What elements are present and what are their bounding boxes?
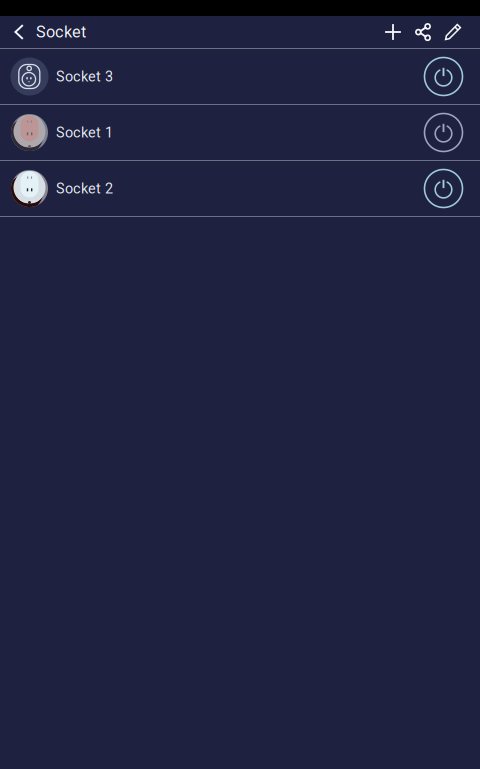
button[interactable]: Share: [408, 16, 438, 48]
button[interactable]: Socket 2: [0, 161, 416, 216]
staticText: Socket 2: [56, 180, 113, 197]
button[interactable]: Turn off Socket 3: [416, 49, 471, 104]
button[interactable]: Back: [4, 16, 34, 48]
button[interactable]: Turn on Socket 1: [416, 105, 471, 160]
staticText: Socket 1: [56, 124, 113, 141]
button[interactable]: Socket 1: [0, 105, 416, 160]
button[interactable]: Turn off Socket 2: [416, 161, 471, 216]
button[interactable]: Socket 3: [0, 49, 416, 104]
staticText: Socket: [36, 22, 86, 42]
button[interactable]: Edit: [438, 16, 468, 48]
staticText: Socket 3: [56, 68, 113, 85]
button[interactable]: Add socket: [378, 16, 408, 48]
